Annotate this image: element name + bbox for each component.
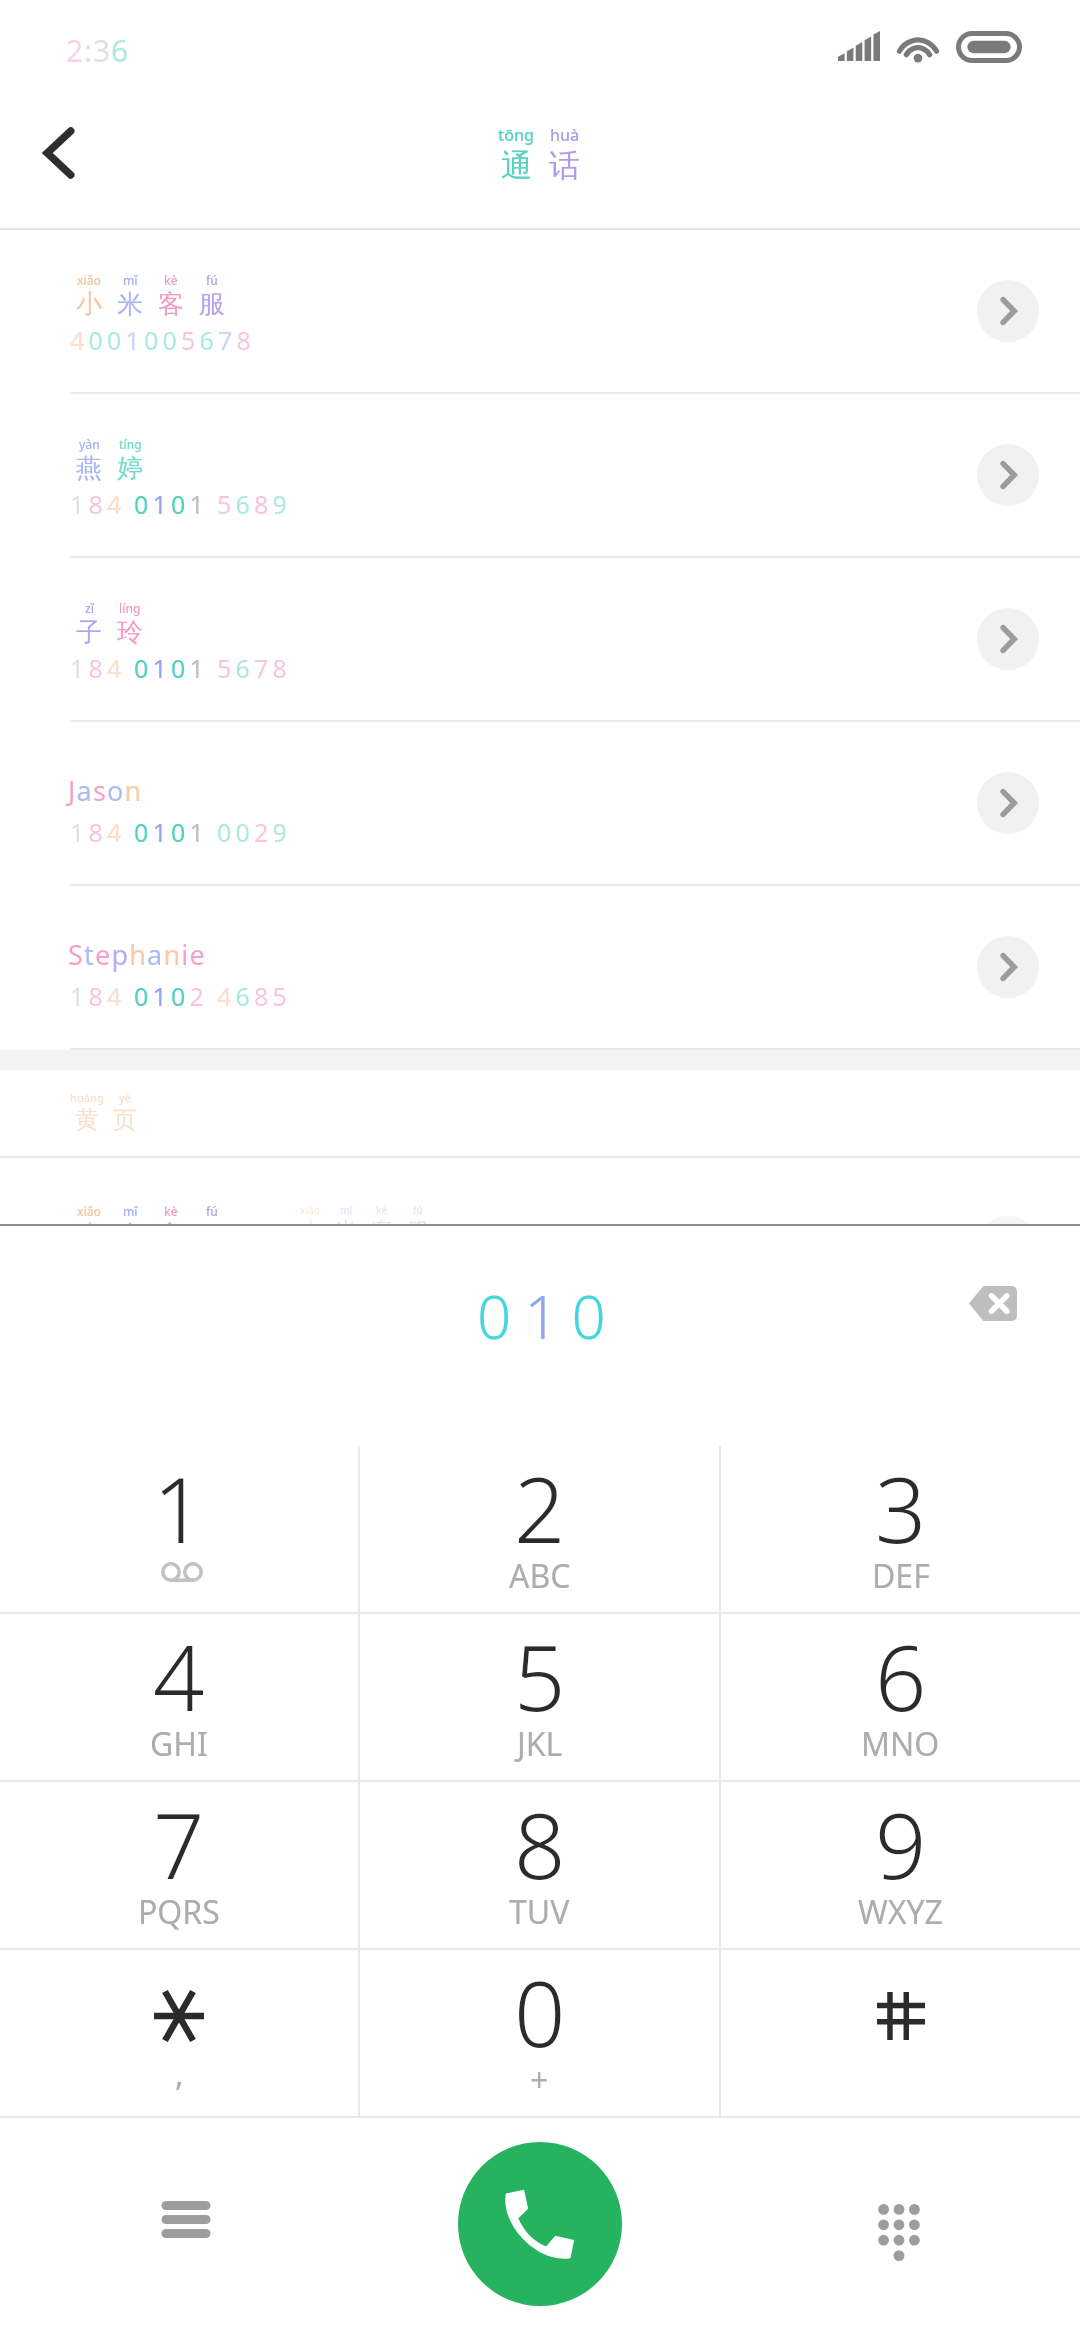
staticText: xiǎo — [77, 1203, 101, 1219]
staticText: 5678 — [217, 651, 292, 685]
button[interactable]: Call log — [146, 2179, 226, 2259]
staticText: ABC — [509, 1554, 571, 1598]
staticText: 话 — [549, 146, 580, 185]
staticText: yàn — [79, 436, 100, 452]
staticText: 0 — [514, 1951, 566, 2074]
staticText: 服 — [199, 288, 225, 321]
button[interactable]: 7 — [0, 1782, 358, 1948]
button[interactable]: xiǎo — [0, 230, 1080, 392]
staticText: fú — [206, 1203, 218, 1219]
staticText: 3 — [93, 30, 111, 71]
button[interactable]: Stephanie — [0, 886, 1080, 1048]
staticText: 小 — [76, 1219, 102, 1224]
button[interactable] — [721, 1950, 1080, 2116]
staticText: yè — [119, 1090, 132, 1105]
staticText: 184 — [70, 815, 126, 849]
button[interactable]: xiǎo — [0, 1158, 1080, 1224]
button[interactable]: 1 — [0, 1446, 358, 1612]
button[interactable]: 5 — [360, 1614, 719, 1780]
staticText: fú — [206, 272, 218, 288]
button[interactable]: zǐ — [0, 558, 1080, 720]
staticText: kè — [164, 1203, 178, 1219]
staticText: mǐ — [123, 1203, 138, 1219]
staticText: Jason — [68, 772, 143, 809]
staticText: JKL — [517, 1722, 563, 1766]
button[interactable]: 0 — [360, 1950, 719, 2116]
button[interactable]: Backspace — [948, 1258, 1038, 1348]
staticText: MNO — [861, 1722, 940, 1766]
staticText: tíng — [119, 436, 142, 452]
staticText: 3 — [875, 1447, 927, 1570]
staticText: 0101 — [134, 651, 209, 685]
button[interactable]: Call — [458, 2142, 622, 2306]
staticText: 客 — [371, 1217, 393, 1224]
staticText: 7 — [153, 1783, 205, 1906]
staticText: 2 — [66, 30, 84, 71]
staticText: 4 — [153, 1615, 205, 1738]
staticText: 184 — [70, 651, 126, 685]
staticText: 米 — [117, 288, 143, 321]
staticText: 米 — [117, 1219, 143, 1224]
staticText: 服 — [407, 1217, 429, 1224]
button[interactable]: yàn — [0, 394, 1080, 556]
button[interactable]: Open contact — [977, 280, 1039, 342]
button[interactable]: Open contact — [977, 772, 1039, 834]
staticText: líng — [119, 600, 141, 616]
button[interactable]: , — [0, 1950, 358, 2116]
staticText: 玲 — [117, 616, 143, 649]
button[interactable]: Open contact — [977, 444, 1039, 506]
staticText: Stephanie — [68, 936, 206, 973]
staticText: 米 — [335, 1217, 357, 1224]
staticText: 4001005678 — [70, 323, 256, 357]
button[interactable]: Jason — [0, 722, 1080, 884]
button[interactable]: Back — [19, 113, 99, 193]
staticText: 0102 — [134, 979, 209, 1013]
staticText: xiǎo — [77, 272, 101, 288]
staticText: 子 — [76, 616, 102, 649]
staticText: mǐ — [123, 272, 138, 288]
staticText: + — [530, 2058, 549, 2102]
button[interactable]: Open contact — [977, 1216, 1039, 1224]
staticText: 184 — [70, 979, 126, 1013]
staticText: kè — [376, 1203, 388, 1217]
button[interactable]: 8 — [360, 1782, 719, 1948]
staticText: 0029 — [217, 815, 292, 849]
button[interactable]: Open contact — [977, 608, 1039, 670]
staticText: 9 — [875, 1783, 927, 1906]
button[interactable]: huáng — [0, 1070, 1080, 1156]
staticText: 4685 — [217, 979, 292, 1013]
staticText: 通 — [501, 146, 532, 185]
staticText: 5 — [514, 1615, 566, 1738]
staticText: 5689 — [217, 487, 292, 521]
staticText: : — [84, 30, 93, 71]
staticText: WXYZ — [858, 1890, 943, 1934]
button[interactable]: 3 — [721, 1446, 1080, 1612]
button[interactable]: 4 — [0, 1614, 358, 1780]
button[interactable]: 9 — [721, 1782, 1080, 1948]
staticText: TUV — [509, 1890, 570, 1934]
button[interactable]: 2 — [360, 1446, 719, 1612]
staticText: 0101 — [134, 815, 209, 849]
staticText: 客 — [158, 288, 184, 321]
staticText: mǐ — [340, 1203, 353, 1217]
staticText: 6 — [111, 30, 129, 71]
staticText: 184 — [70, 487, 126, 521]
staticText: 1 — [153, 1447, 205, 1570]
staticText: kè — [164, 272, 178, 288]
staticText: 婷 — [117, 452, 143, 485]
staticText: GHI — [150, 1722, 208, 1766]
staticText: 小 — [299, 1217, 321, 1224]
staticText: 黄 — [75, 1105, 99, 1135]
button[interactable]: 6 — [721, 1614, 1080, 1780]
staticText: zǐ — [85, 600, 94, 616]
staticText: 010 — [477, 1275, 619, 1357]
button[interactable]: Open contact — [977, 936, 1039, 998]
staticText: xiǎo — [300, 1203, 320, 1217]
button[interactable]: Dialpad — [859, 2188, 939, 2268]
staticText: 2 — [514, 1447, 566, 1570]
staticText: 小 — [76, 288, 102, 321]
staticText: tōng — [498, 124, 534, 146]
staticText: 燕 — [76, 452, 102, 485]
staticText: huáng — [70, 1090, 104, 1105]
